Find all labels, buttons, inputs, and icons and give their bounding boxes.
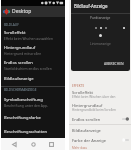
button[interactable]: Hintergrundlauf xyxy=(1,42,65,57)
staticText: Hintergrund mitscrollen xyxy=(4,51,42,55)
staticText: BILDSCHIRMANZEIGE xyxy=(4,88,37,92)
staticText: Bildlaufanzeige xyxy=(72,128,101,133)
button[interactable]: Scrolleffekt xyxy=(1,28,65,42)
staticText: Farbe der Anzeige xyxy=(72,138,107,143)
staticText: Hintergrundlauf xyxy=(4,45,36,51)
button[interactable]: Farbe der Anzeige xyxy=(69,135,131,145)
button[interactable]: Endlos scrollen xyxy=(1,57,65,72)
button[interactable]: Beschriftungsschatten xyxy=(1,126,65,138)
button[interactable]: Punktanzeige xyxy=(71,14,130,32)
staticText: Beschriftungsschatten xyxy=(4,129,48,135)
button[interactable]: Beschriftungsfarbe xyxy=(1,110,65,126)
staticText: Effekt beim Wischen über den Bildschirm xyxy=(72,95,129,99)
staticText: Symbolbeschriftung xyxy=(4,97,43,103)
staticText: Effekt beim Wischen auswählen xyxy=(4,36,54,40)
staticText: Bildlauf-Anzeige xyxy=(74,3,108,9)
button[interactable]: Endlos scrollen xyxy=(69,114,131,124)
staticText: Linienanzeige xyxy=(90,42,111,46)
staticText: Endlos scrollen xyxy=(4,60,33,66)
staticText: Hintergrundlauf xyxy=(72,103,103,108)
button[interactable]: Hintergrundlauf xyxy=(69,101,131,114)
staticText: Beschriftungsfarbe xyxy=(4,115,41,121)
button[interactable]: Scrolleffekt xyxy=(69,88,131,101)
staticText: Endlos scrollen xyxy=(72,117,101,122)
button[interactable]: Back xyxy=(9,139,20,150)
staticText: Scrolleffekt xyxy=(4,30,26,36)
staticText: Desktop xyxy=(12,8,32,15)
staticText: Bildlaufanzeige xyxy=(4,76,34,82)
button[interactable]: ABBRECHEN xyxy=(102,60,126,67)
button[interactable]: Bildlaufanzeige xyxy=(69,125,131,135)
staticText: EFFEKTE xyxy=(72,84,85,88)
button[interactable]: Bildlaufanzeige xyxy=(1,72,65,86)
staticText: ABBRECHEN xyxy=(104,61,124,66)
button[interactable]: Endlos scrollen xyxy=(122,117,129,121)
staticText: Startbildschirm endlos scrollen xyxy=(4,66,52,70)
staticText: BILDLAUF xyxy=(4,23,19,27)
button[interactable]: Symbolbeschriftung xyxy=(1,93,65,110)
staticText: Punktanzeige xyxy=(90,16,111,20)
button[interactable]: Home xyxy=(28,139,39,150)
staticText: Mehr dazu xyxy=(72,146,88,150)
staticText: Beschriftung unter den App-Symbolen zeig… xyxy=(4,103,63,107)
button[interactable]: Mehr dazu xyxy=(72,146,131,150)
button[interactable]: Farbe der Anzeige xyxy=(122,138,129,142)
button[interactable]: Desktop xyxy=(1,6,65,17)
button[interactable]: Recent apps xyxy=(46,139,57,150)
staticText: Hintergrundbild beim Scrollen bewegen xyxy=(72,108,129,112)
button[interactable]: Linienanzeige xyxy=(71,32,130,47)
staticText: Scrolleffekt xyxy=(72,90,94,95)
